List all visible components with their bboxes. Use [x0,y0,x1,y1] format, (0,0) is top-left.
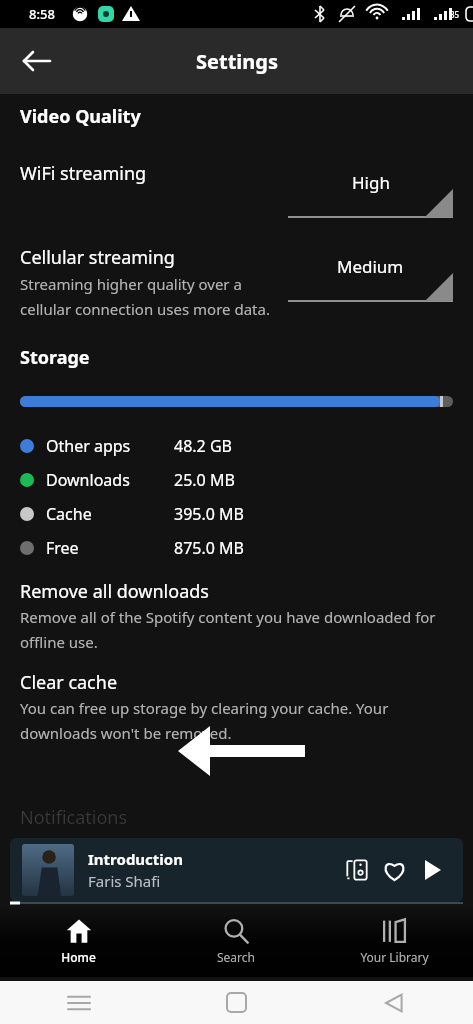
button[interactable]: Your Library [315,905,473,977]
staticText: Search [217,949,255,965]
staticText: Streaming higher quality over a cellular… [20,274,280,319]
button[interactable]: Recents [0,981,157,1024]
button[interactable]: Cellular streaming [20,245,453,319]
button[interactable]: High [288,161,453,223]
button[interactable]: Like [375,851,413,889]
button[interactable]: Notifications [20,805,453,853]
staticText: 8:58 [29,5,55,23]
button[interactable]: Introduction [10,838,463,902]
staticText: Choose which notifications to receive [20,833,282,853]
staticText: Remove all downloads [20,579,209,604]
button[interactable]: Connect to a device [339,852,375,888]
staticText: Storage [20,345,90,370]
staticText: Video Quality [20,104,141,129]
staticText: Cellular streaming [20,245,175,270]
staticText: 35 [450,9,460,20]
button[interactable]: WiFi streaming [20,161,453,223]
button[interactable]: Play [413,851,451,889]
button[interactable]: Clear cache [20,670,453,743]
staticText: Faris Shafi [88,871,161,891]
staticText: Other apps [46,435,131,457]
staticText: 25.0 MB [174,469,235,491]
staticText: Downloads [46,469,130,491]
staticText: Cache [46,503,92,525]
staticText: Your Library [360,949,429,965]
staticText: 48.2 GB [174,435,232,457]
staticText: Free [46,537,79,559]
staticText: Home [61,949,96,965]
staticText: Clear cache [20,670,118,695]
staticText: Remove all of the Spotify content you ha… [20,607,453,652]
staticText: Medium [337,255,404,278]
staticText: Settings [196,48,278,75]
staticText: WiFi streaming [20,161,147,186]
button[interactable]: Home [157,981,315,1024]
staticText: Introduction [88,849,183,869]
staticText: High [352,171,390,194]
button[interactable]: Home [0,905,157,977]
button[interactable]: Back [14,38,60,84]
staticText: 875.0 MB [174,537,244,559]
button[interactable]: Search [157,905,315,977]
staticText: 395.0 MB [174,503,244,525]
button[interactable]: Back [315,981,473,1024]
staticText: Notifications [20,805,128,830]
button[interactable]: Medium [288,245,453,307]
staticText: You can free up storage by clearing your… [20,698,453,743]
button[interactable]: Remove all downloads [20,579,453,652]
